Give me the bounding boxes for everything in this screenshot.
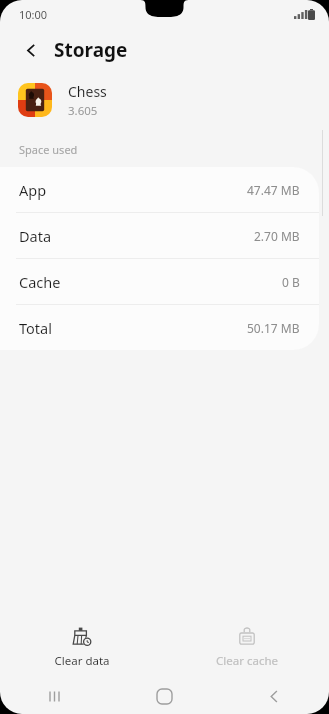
staticText: 50.17 MB — [247, 320, 300, 336]
staticText: App — [19, 180, 47, 200]
staticText: Cache — [19, 272, 61, 292]
button[interactable]: Clear cache — [164, 621, 329, 675]
staticText: 3.605 — [68, 103, 98, 119]
button[interactable]: Cache — [0, 259, 319, 305]
button[interactable]: Recent apps — [0, 678, 109, 714]
button[interactable]: Clear data — [0, 621, 164, 675]
staticText: 0 B — [282, 274, 300, 290]
staticText: Clear cache — [216, 653, 278, 669]
staticText: 10:00 — [19, 7, 48, 22]
button[interactable]: Home — [109, 678, 219, 714]
button[interactable]: Back — [16, 35, 46, 65]
staticText: Storage — [54, 37, 128, 63]
staticText: Total — [19, 318, 52, 338]
staticText: 2.70 MB — [254, 228, 300, 244]
button[interactable]: Data — [0, 213, 319, 259]
button[interactable]: Back — [219, 678, 329, 714]
staticText: Chess — [68, 82, 107, 101]
button[interactable]: App — [0, 167, 319, 213]
staticText: Data — [19, 226, 52, 246]
staticText: Clear data — [54, 653, 110, 669]
staticText: 47.47 MB — [247, 182, 300, 198]
staticText: Space used — [19, 142, 78, 157]
button[interactable]: Total — [0, 305, 319, 350]
